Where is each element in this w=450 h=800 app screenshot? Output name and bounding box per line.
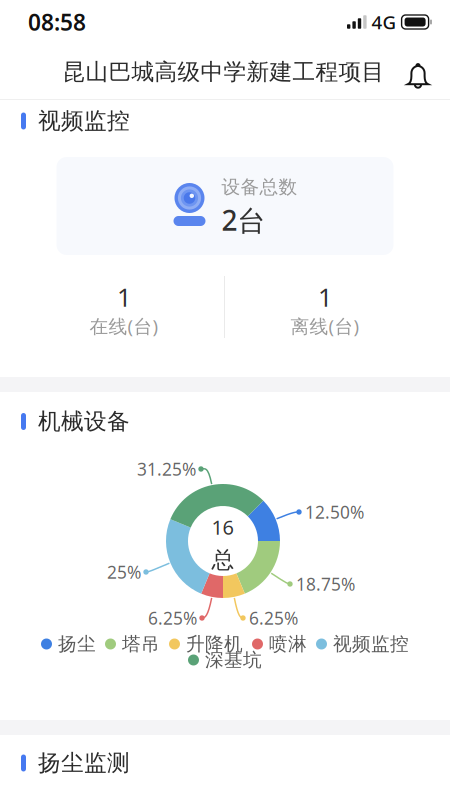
staticText: 25% — [107, 560, 141, 583]
staticText: 1 — [318, 280, 332, 314]
staticText: 喷淋 — [269, 632, 307, 655]
staticText: 设备总数 — [221, 175, 297, 198]
staticText: 视频监控 — [38, 107, 130, 135]
staticText: 08:58 — [28, 7, 86, 37]
staticText: 4G — [372, 10, 397, 34]
staticText: 18.75% — [296, 572, 355, 595]
staticText: 2台 — [221, 201, 265, 239]
staticText: 机械设备 — [38, 408, 130, 435]
staticText: 16 — [211, 514, 233, 540]
staticText: 昆山巴城高级中学新建工程项目 — [62, 58, 384, 86]
staticText: 6.25% — [148, 606, 197, 629]
staticText: 31.25% — [137, 457, 196, 480]
staticText: 升降机 — [186, 632, 243, 655]
staticText: 视频监控 — [333, 632, 409, 655]
staticText: 总 — [211, 546, 234, 574]
button[interactable]: 通知 — [395, 46, 441, 98]
staticText: 1 — [117, 280, 131, 314]
staticText: 扬尘 — [58, 632, 96, 655]
staticText: 扬尘监测 — [38, 749, 130, 777]
staticText: 深基坑 — [205, 648, 262, 671]
staticText: 塔吊 — [122, 632, 160, 655]
staticText: 12.50% — [305, 500, 364, 523]
staticText: 在线(台) — [89, 314, 158, 338]
staticText: 离线(台) — [290, 314, 359, 338]
staticText: 6.25% — [249, 606, 298, 629]
